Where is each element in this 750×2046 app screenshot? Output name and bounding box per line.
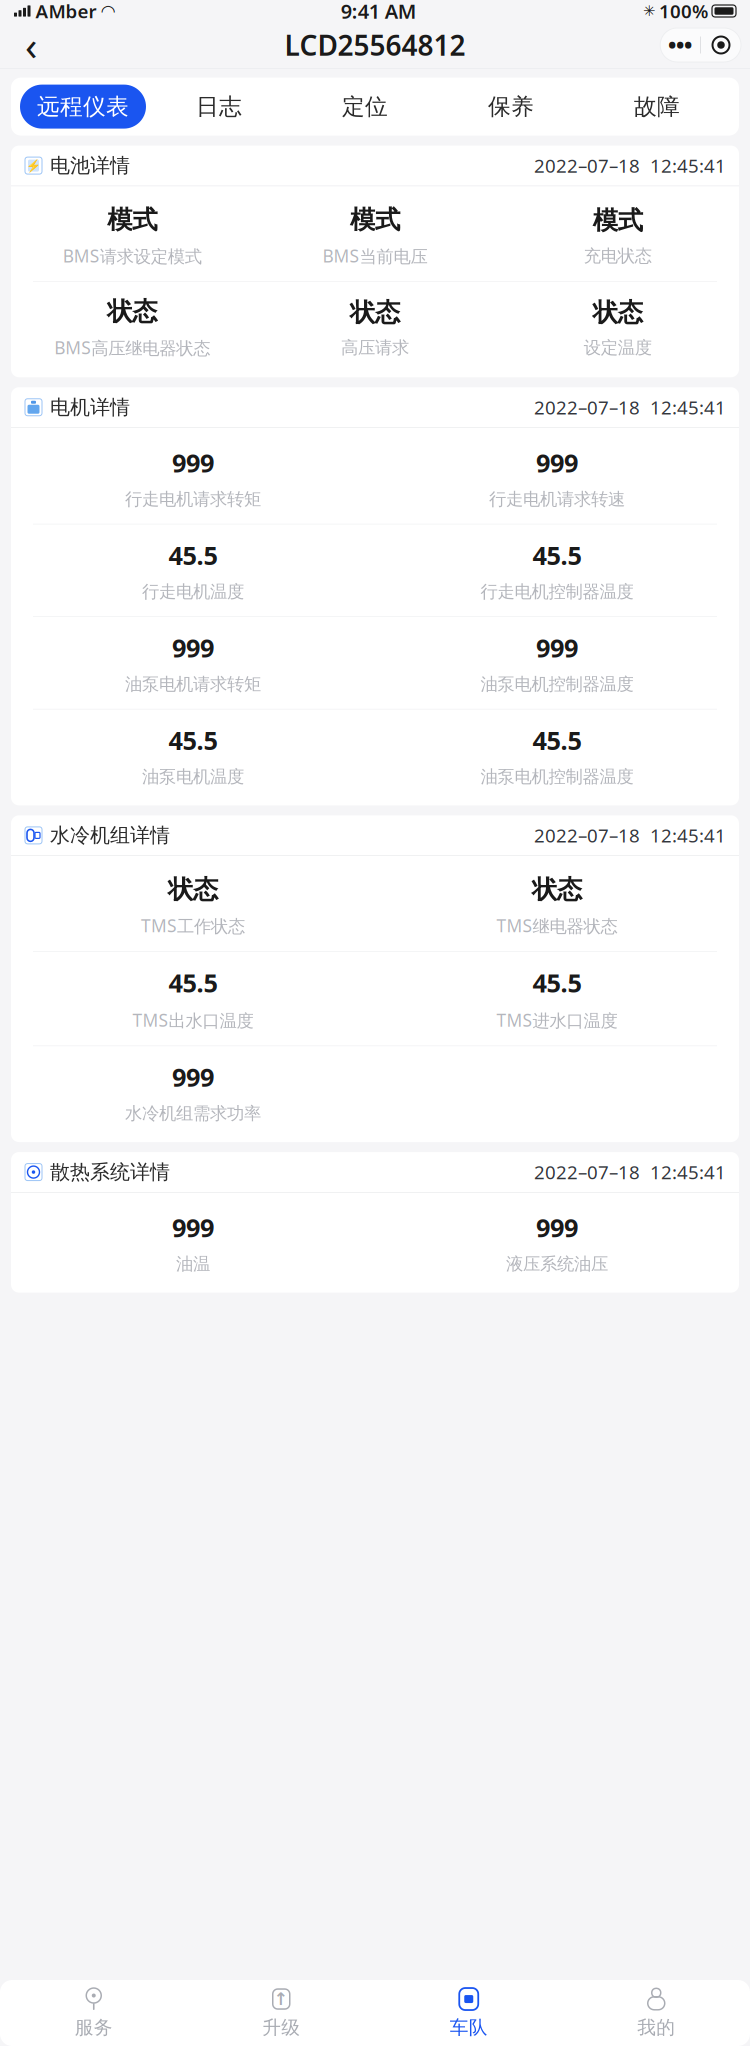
staticText: 100% (659, 0, 708, 23)
staticText: 999 (536, 631, 578, 664)
button[interactable]: More options (660, 28, 741, 62)
staticText: 水冷机组需求功率 (125, 1103, 261, 1124)
staticText: 升级 (262, 2016, 300, 2039)
staticText: 我的 (637, 2016, 675, 2039)
button[interactable]: 服务 (0, 1980, 187, 2046)
staticText: 油泵电机控制器温度 (480, 766, 633, 787)
staticText: 45.5 (168, 723, 217, 757)
staticText: 定位 (342, 93, 388, 120)
button[interactable]: 我的 (562, 1980, 750, 2046)
staticText: 2022–07–18 12:45:41 (534, 823, 726, 848)
button[interactable]: 车队 (375, 1980, 562, 2046)
staticText: 保养 (488, 93, 534, 120)
staticText: 行走电机请求转矩 (125, 488, 261, 510)
staticText: 45.5 (168, 538, 217, 572)
staticText: 45.5 (532, 723, 581, 757)
staticText: LCD25564812 (284, 26, 465, 64)
staticText: 水冷机组详情 (50, 823, 170, 848)
button[interactable]: ↑ (187, 1980, 375, 2046)
staticText: 999 (172, 1211, 214, 1244)
staticText: 999 (172, 1060, 214, 1094)
staticText: TMS出水口温度 (132, 1008, 253, 1031)
staticText: 散热系统详情 (50, 1160, 170, 1184)
staticText: 45.5 (532, 966, 581, 999)
staticText: 电池详情 (50, 153, 130, 178)
staticText: 状态 (593, 297, 643, 328)
staticText: 模式 (350, 204, 400, 235)
staticText: 高压请求 (341, 337, 409, 358)
staticText: 45.5 (168, 966, 217, 999)
staticText: 日志 (196, 93, 242, 120)
staticText: ✳ (643, 3, 655, 19)
staticText: 设定温度 (584, 337, 652, 358)
staticText: 模式 (593, 205, 643, 236)
staticText: 油温 (176, 1253, 210, 1275)
staticText: TMS进水口温度 (496, 1008, 617, 1031)
staticText: BMS请求设定模式 (63, 244, 202, 267)
staticText: 电机详情 (50, 395, 130, 420)
button[interactable]: Back (9, 23, 53, 67)
staticText: 模式 (107, 204, 157, 235)
staticText: 液压系统油压 (506, 1253, 608, 1275)
staticText: 2022–07–18 12:45:41 (534, 395, 726, 420)
staticText: 2022–07–18 12:45:41 (534, 1160, 726, 1184)
staticText: 状态 (532, 874, 582, 905)
staticText: 状态 (168, 874, 218, 905)
button[interactable]: 保养 (438, 85, 584, 129)
staticText: 油泵电机控制器温度 (480, 674, 633, 695)
button[interactable]: 日志 (146, 85, 292, 129)
staticText: 999 (172, 446, 214, 479)
staticText: 45.5 (532, 538, 581, 572)
staticText: 行走电机温度 (142, 581, 244, 602)
staticText: 油泵电机温度 (142, 766, 244, 787)
staticText: ‹ (25, 18, 37, 71)
button[interactable]: 远程仪表 (20, 85, 146, 129)
staticText: 999 (172, 631, 214, 664)
staticText: 远程仪表 (37, 93, 129, 120)
staticText: 行走电机请求转速 (489, 488, 625, 510)
staticText: ⚡ (26, 159, 41, 172)
staticText: 9:41 AM (341, 0, 417, 24)
staticText: 999 (536, 1211, 578, 1244)
staticText: ••• (668, 32, 692, 58)
staticText: 行走电机控制器温度 (480, 581, 633, 602)
staticText: 状态 (350, 297, 400, 328)
staticText: 999 (536, 446, 578, 479)
staticText: BMS高压继电器状态 (54, 336, 210, 359)
staticText: BMS当前电压 (322, 244, 427, 267)
staticText: TMS工作状态 (141, 914, 245, 937)
staticText: 车队 (450, 2016, 488, 2039)
staticText: ◠ (101, 1, 114, 21)
button[interactable]: 定位 (292, 85, 438, 129)
staticText: 2022–07–18 12:45:41 (534, 153, 726, 178)
staticText: ↑ (274, 1989, 289, 2009)
staticText: TMS继电器状态 (496, 914, 617, 937)
staticText: AMber (35, 0, 96, 23)
staticText: 油泵电机请求转矩 (125, 674, 261, 695)
staticText: 充电状态 (584, 245, 652, 266)
staticText: 服务 (75, 2016, 113, 2039)
staticText: 状态 (107, 296, 157, 327)
button[interactable]: 故障 (584, 85, 730, 129)
staticText: 故障 (634, 93, 680, 120)
